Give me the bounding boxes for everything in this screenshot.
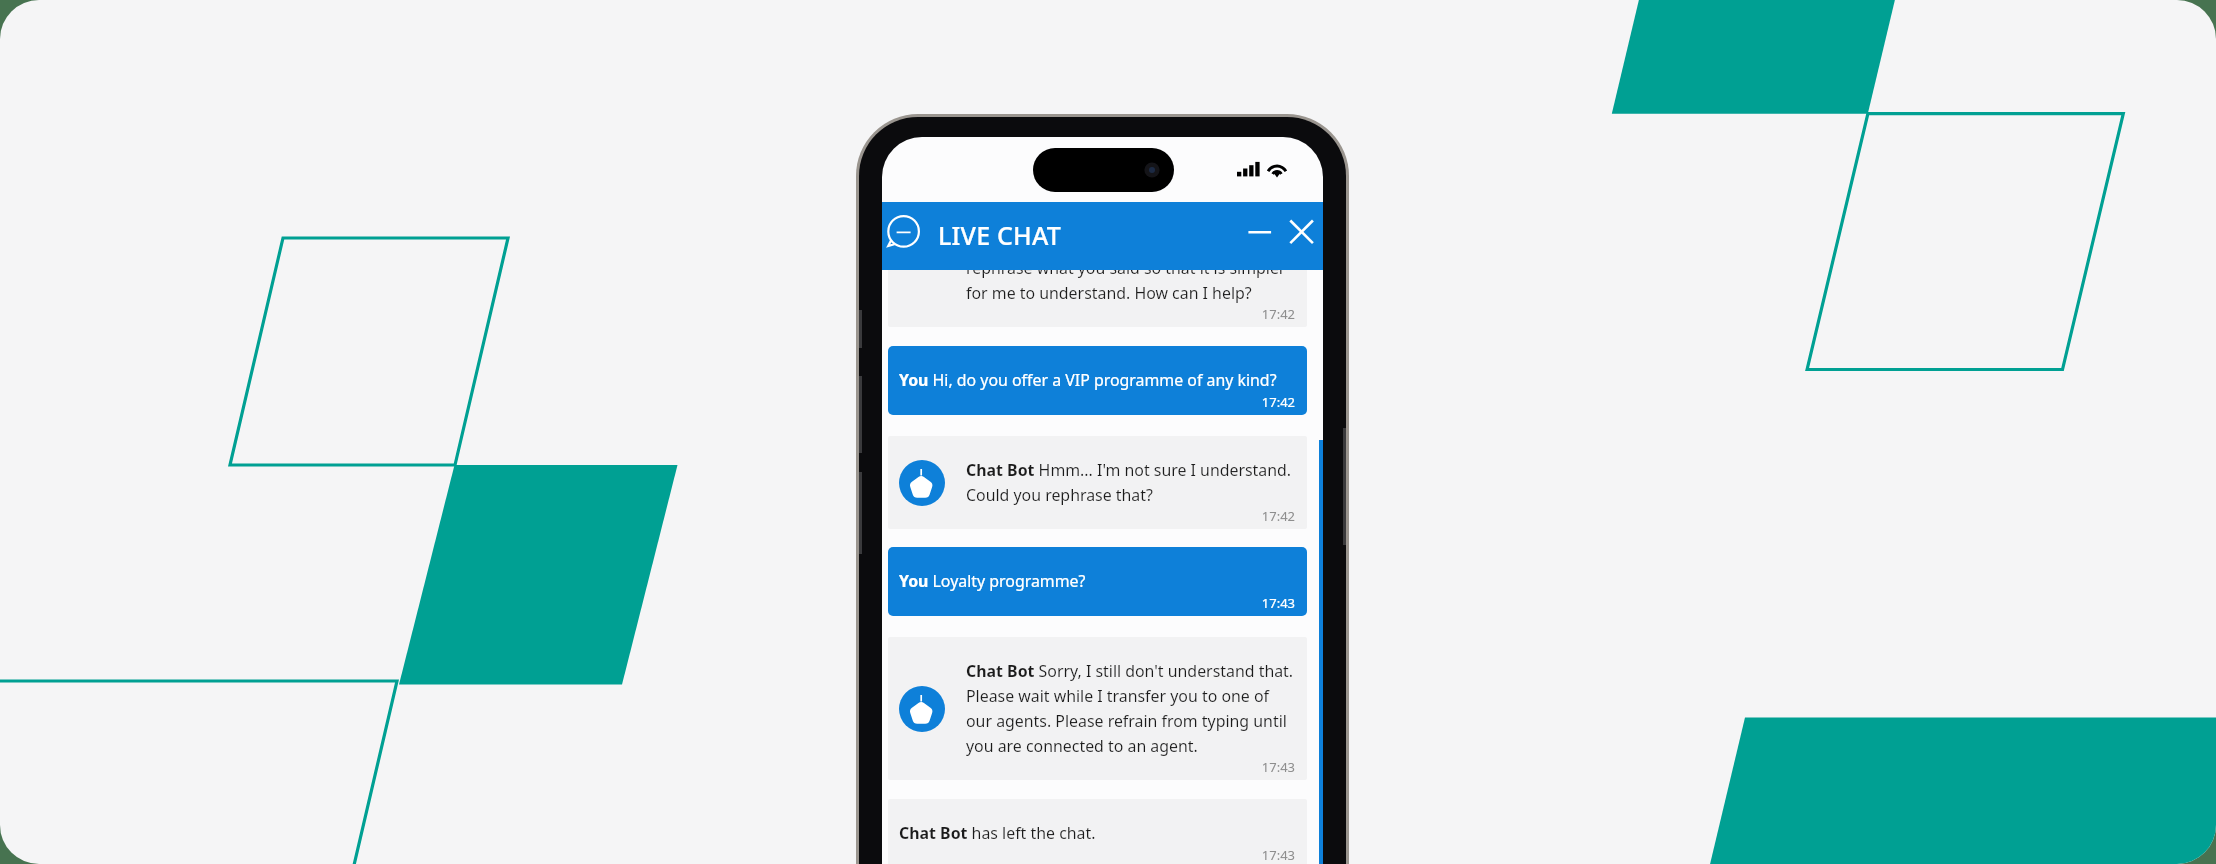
button[interactable]: Chat Bot Sorry, I didn't get that. Pleas… — [888, 270, 1307, 327]
staticText: Chat Bot Sorry, I didn't get that. Pleas… — [966, 270, 1295, 303]
button[interactable]: Chat Bot Hmm... I'm not sure I understan… — [888, 436, 1307, 529]
staticText: 17:43 — [966, 758, 1295, 776]
staticText: Chat Bot Hmm... I'm not sure I understan… — [966, 459, 1295, 505]
button[interactable]: Live chat — [887, 215, 921, 249]
button[interactable]: Close — [1282, 220, 1322, 252]
button[interactable]: Minimise — [1240, 220, 1280, 252]
staticText: 17:43 — [899, 594, 1295, 612]
staticText: Chat Bot has left the chat. — [899, 822, 1096, 844]
staticText: You Loyalty programme? — [899, 570, 1086, 592]
staticText: 17:42 — [899, 393, 1295, 411]
button[interactable]: Chat Bot has left the chat. — [888, 799, 1307, 864]
button[interactable]: You Hi, do you offer a VIP programme of … — [888, 346, 1307, 415]
staticText: 17:42 — [966, 507, 1295, 525]
button[interactable]: Chat Bot Sorry, I still don't understand… — [888, 637, 1307, 780]
staticText: Chat Bot Sorry, I still don't understand… — [966, 660, 1295, 756]
button[interactable]: You Loyalty programme? — [888, 547, 1307, 616]
staticText: You Hi, do you offer a VIP programme of … — [899, 369, 1277, 391]
staticText: 17:42 — [966, 305, 1295, 323]
staticText: LIVE CHAT — [938, 218, 1062, 252]
staticText: 17:43 — [899, 846, 1295, 864]
